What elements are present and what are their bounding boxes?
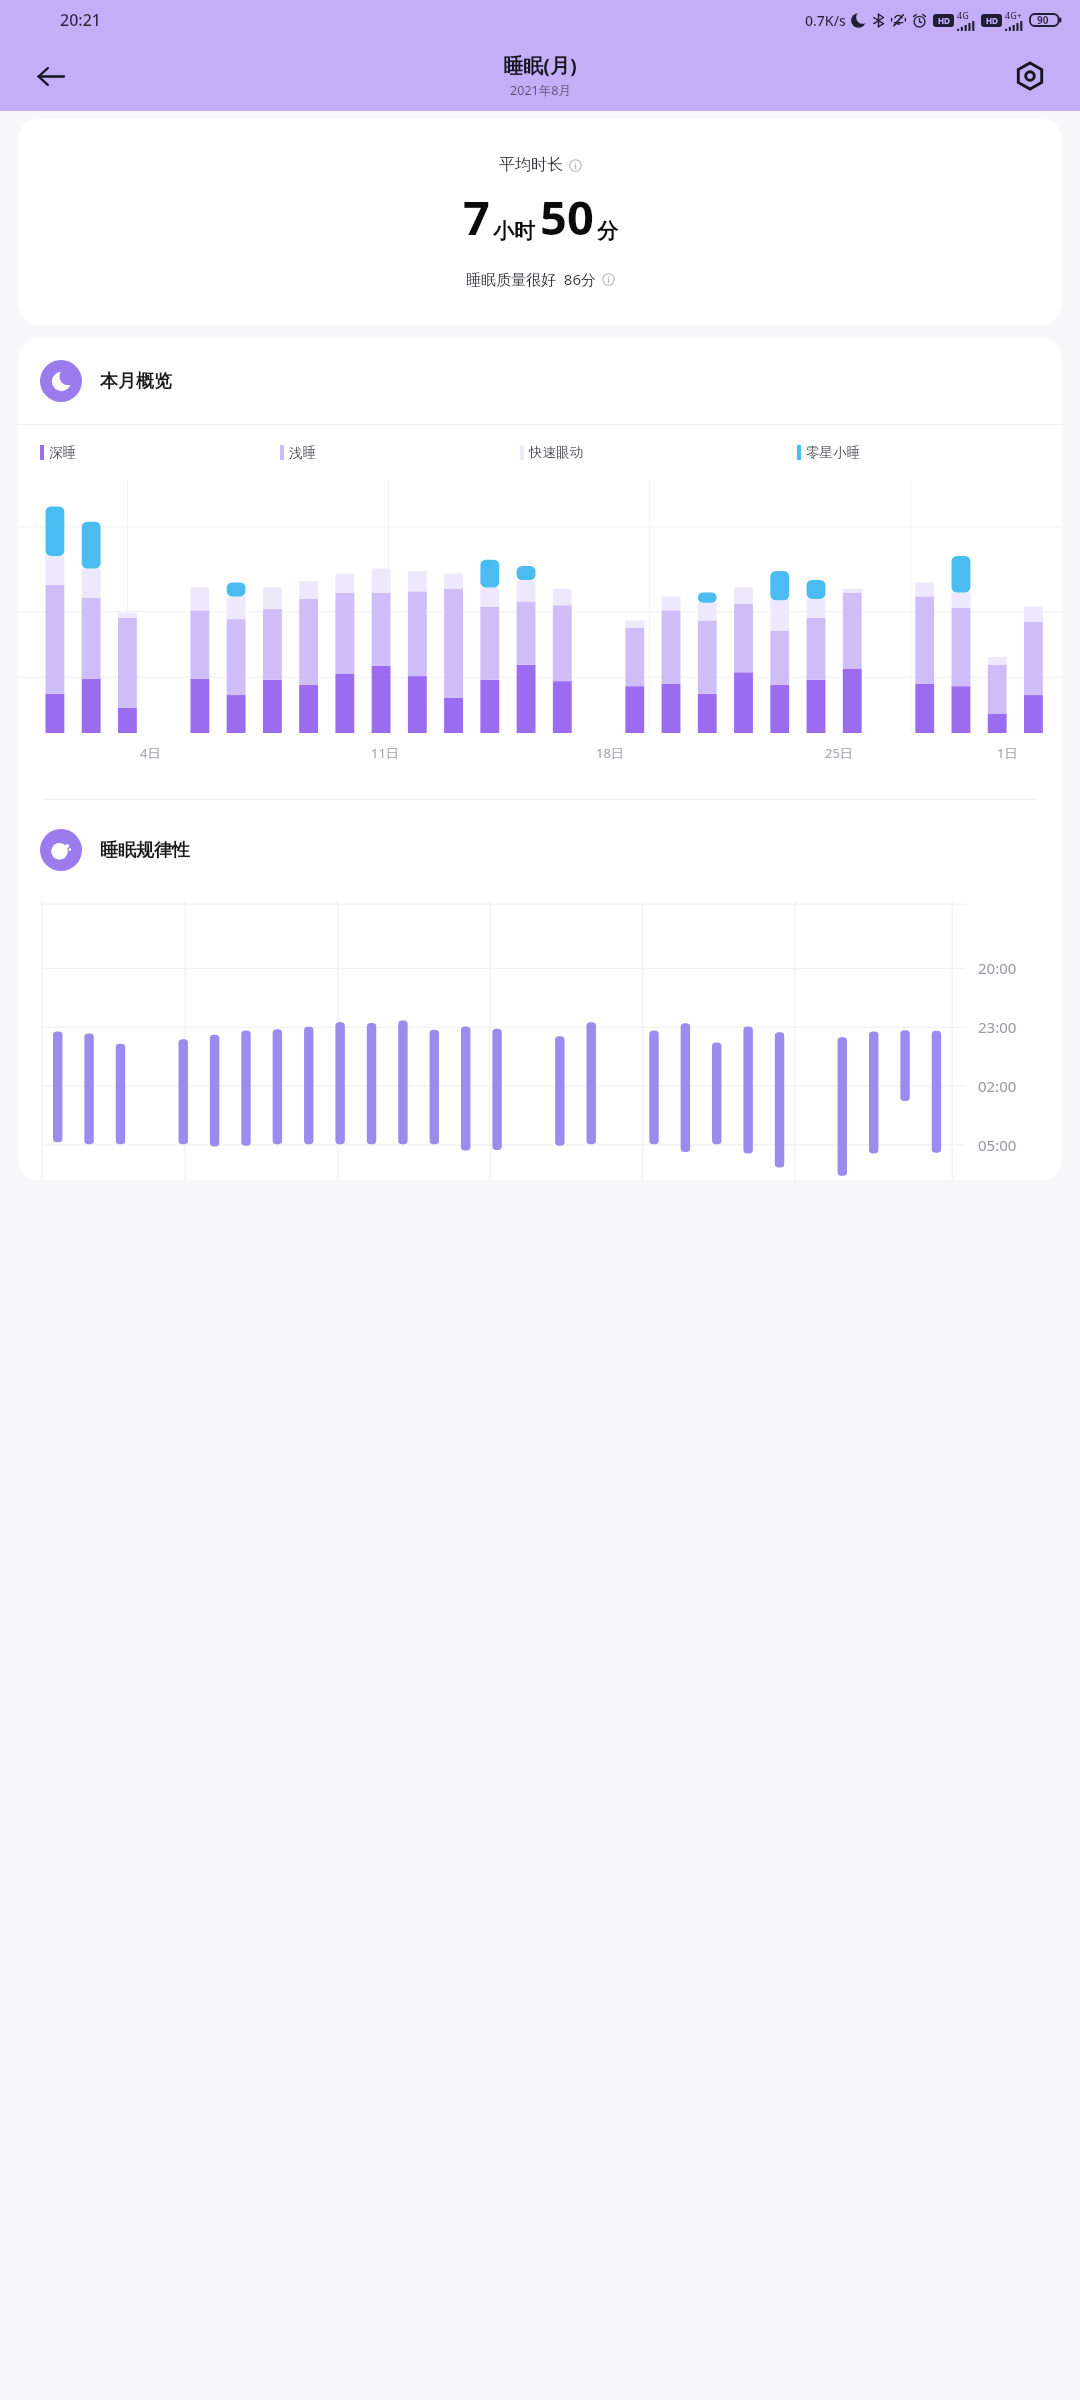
staticText: 睡眠规律性 [100, 839, 190, 862]
button[interactable]: 返回 [26, 52, 74, 100]
staticText: 4G [957, 9, 969, 21]
staticText: 18日 [596, 744, 624, 762]
staticText: 4日 [140, 744, 161, 762]
staticText: 05:00 [978, 1135, 1017, 1155]
button[interactable]: 平均时长 [18, 119, 1062, 325]
staticText: 02:00 [978, 1076, 1017, 1096]
staticText: 23:00 [978, 1017, 1017, 1037]
staticText: HD [986, 15, 998, 26]
staticText: 20:21 [60, 9, 101, 31]
staticText: 分 [597, 218, 618, 244]
staticText: 睡眠质量很好 86分 [466, 269, 596, 289]
staticText: 浅睡 [289, 444, 316, 461]
staticText: 4G+ [1005, 9, 1022, 21]
staticText: 本月概览 [100, 370, 172, 393]
button[interactable]: 本月概览 [18, 338, 1062, 424]
staticText: 25日 [825, 744, 853, 762]
staticText: 零星小睡 [806, 444, 860, 461]
staticText: 90 [1037, 13, 1049, 27]
staticText: 11日 [371, 744, 399, 762]
button[interactable]: 设置 [1006, 52, 1054, 100]
staticText: 平均时长 [499, 155, 563, 175]
staticText: 1日 [997, 744, 1018, 762]
staticText: 7 [463, 185, 490, 249]
staticText: 睡眠(月) [503, 52, 577, 79]
staticText: 50 [540, 185, 594, 249]
staticText: 0.7K/s [805, 11, 846, 30]
button[interactable]: 睡眠规律性 [18, 800, 1062, 900]
staticText: 小时 [493, 218, 535, 244]
staticText: 深睡 [49, 444, 76, 461]
staticText: HD [938, 15, 950, 26]
staticText: 快速眼动 [529, 444, 583, 461]
staticText: 20:00 [978, 958, 1017, 978]
staticText: 2021年8月 [510, 82, 571, 99]
